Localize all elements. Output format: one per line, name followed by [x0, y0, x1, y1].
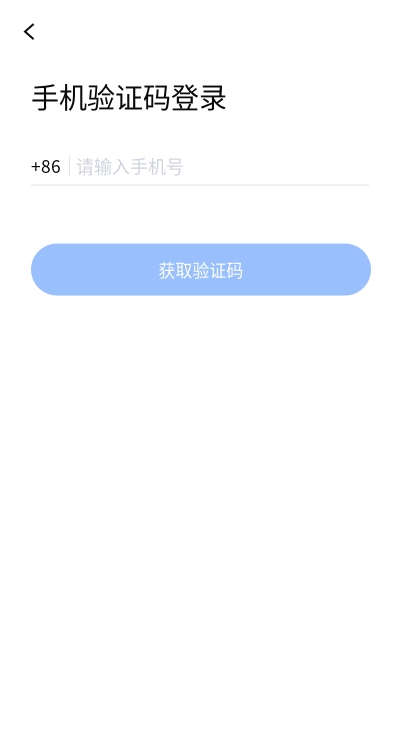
button[interactable]: 获取验证码 [31, 243, 371, 295]
button[interactable]: Back [0, 0, 58, 46]
staticText: 请输入手机号 [76, 152, 184, 179]
staticText: 手机验证码登录 [31, 76, 227, 116]
staticText: +86 [31, 153, 61, 178]
staticText: 获取验证码 [158, 257, 243, 282]
button[interactable]: +86 [31, 152, 369, 185]
